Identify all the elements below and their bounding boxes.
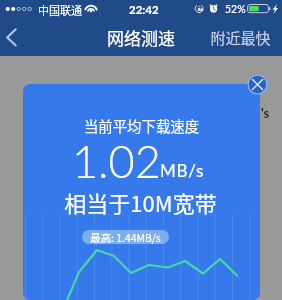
staticText: 1.02 — [72, 134, 161, 188]
button[interactable]: 最高: 1.44MB/s — [82, 230, 169, 244]
staticText: 中国联通 — [38, 2, 82, 18]
staticText: 's — [261, 105, 270, 121]
button[interactable]: Close — [247, 74, 268, 95]
button[interactable]: Back — [0, 20, 30, 56]
staticText: 52% — [225, 3, 246, 16]
staticText: 网络测速 — [0, 25, 282, 50]
staticText: MB/s — [160, 160, 204, 180]
staticText: 22:42 — [129, 3, 159, 17]
staticText: 相当于10M宽带 — [23, 186, 259, 218]
button[interactable]: 附近最快 — [204, 20, 276, 56]
staticText: 当前平均下载速度 — [23, 115, 260, 136]
staticText: 附近最快 — [210, 27, 271, 49]
staticText: 最高: 1.44MB/s — [90, 230, 161, 244]
